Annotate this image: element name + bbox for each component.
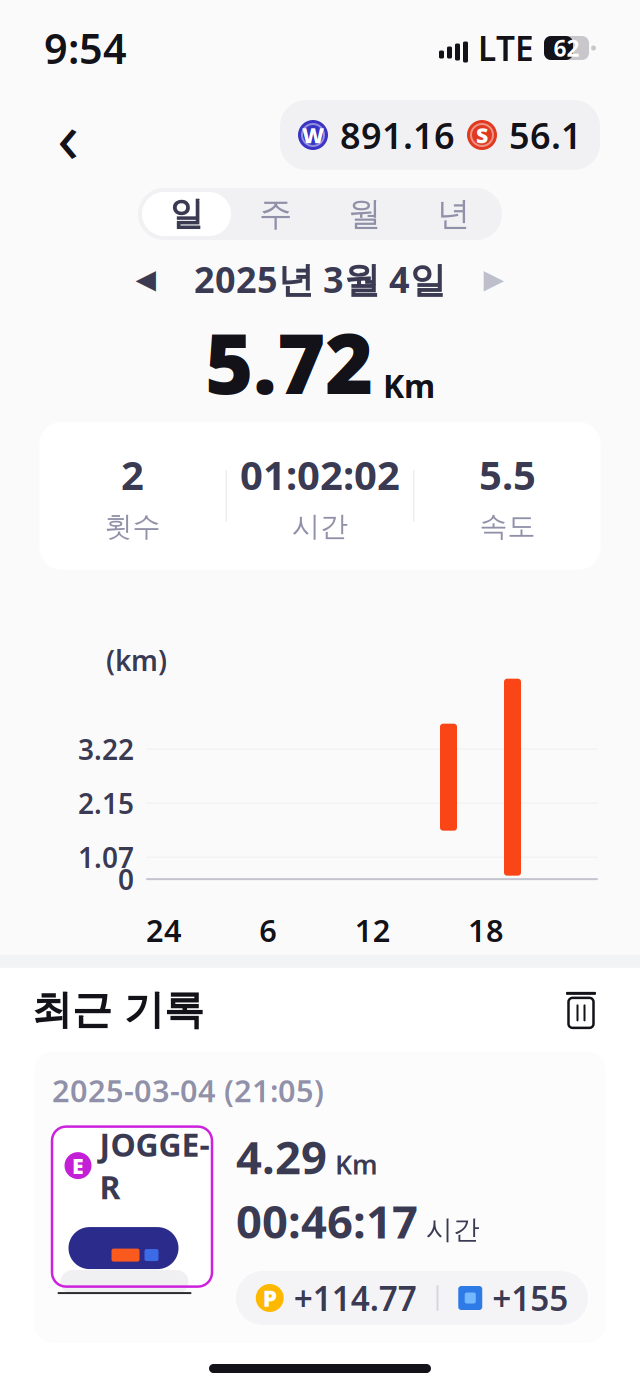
staticText: 2.15 — [78, 784, 134, 822]
staticText: 6 — [259, 910, 277, 950]
staticText: 00:46:17 — [236, 1191, 418, 1251]
staticText: LTE — [478, 26, 534, 70]
staticText: 최근 기록 — [32, 985, 204, 1034]
staticText: 18 — [468, 910, 504, 950]
staticText: 891.16 — [340, 111, 455, 159]
staticText: 2025-03-04 (21:05) — [52, 1070, 324, 1111]
button[interactable]: Previous day — [126, 259, 166, 299]
staticText: 5.72 — [205, 307, 373, 417]
staticText: W — [302, 121, 324, 149]
staticText: 속도 — [479, 509, 535, 543]
button[interactable]: 일 — [142, 192, 231, 236]
button[interactable]: 년 — [409, 192, 498, 236]
staticText: 3.22 — [78, 730, 134, 768]
staticText: 5.5 — [479, 448, 536, 501]
staticText: E — [72, 1151, 84, 1180]
staticText: 시간 — [292, 509, 348, 543]
staticText: 년 — [437, 193, 470, 234]
button[interactable]: 월 — [320, 192, 409, 236]
button[interactable]: Back — [40, 107, 96, 163]
staticText: +155 — [492, 1276, 568, 1320]
staticText: 주 — [259, 193, 292, 234]
button[interactable]: Next day — [474, 259, 514, 299]
staticText: 01:02:02 — [240, 448, 400, 501]
staticText: 1.07 — [78, 838, 134, 876]
staticText: +114.77 — [294, 1276, 417, 1320]
staticText: 횟수 — [104, 509, 160, 543]
staticText: ◀ — [135, 264, 156, 294]
staticText: 시간 — [426, 1213, 480, 1246]
staticText: 62 — [553, 33, 579, 63]
staticText: 월 — [348, 193, 381, 234]
staticText: 2 — [121, 448, 144, 501]
staticText: 24 — [146, 910, 182, 950]
staticText: Km — [335, 1146, 378, 1182]
button[interactable]: 주 — [231, 192, 320, 236]
staticText: 4.29 — [236, 1127, 327, 1187]
button[interactable]: W — [280, 100, 600, 170]
button[interactable]: Delete all records — [554, 983, 608, 1037]
staticText: 일 — [170, 193, 203, 234]
staticText: P — [263, 1283, 277, 1313]
staticText: 2025년 3월 4일 — [194, 255, 446, 303]
staticText: 56.1 — [509, 111, 582, 159]
staticText: 12 — [355, 910, 391, 950]
staticText: Km — [383, 364, 435, 407]
staticText: ‹ — [57, 87, 79, 183]
button[interactable]: 2025-03-04 (21:05) — [36, 1052, 604, 1343]
staticText: JOGGER — [99, 1123, 209, 1208]
staticText: 9:54 — [44, 21, 127, 75]
staticText: S — [476, 121, 488, 149]
staticText: (km) — [106, 641, 167, 679]
staticText: 0 — [118, 860, 134, 898]
staticText: ▶ — [483, 264, 504, 294]
